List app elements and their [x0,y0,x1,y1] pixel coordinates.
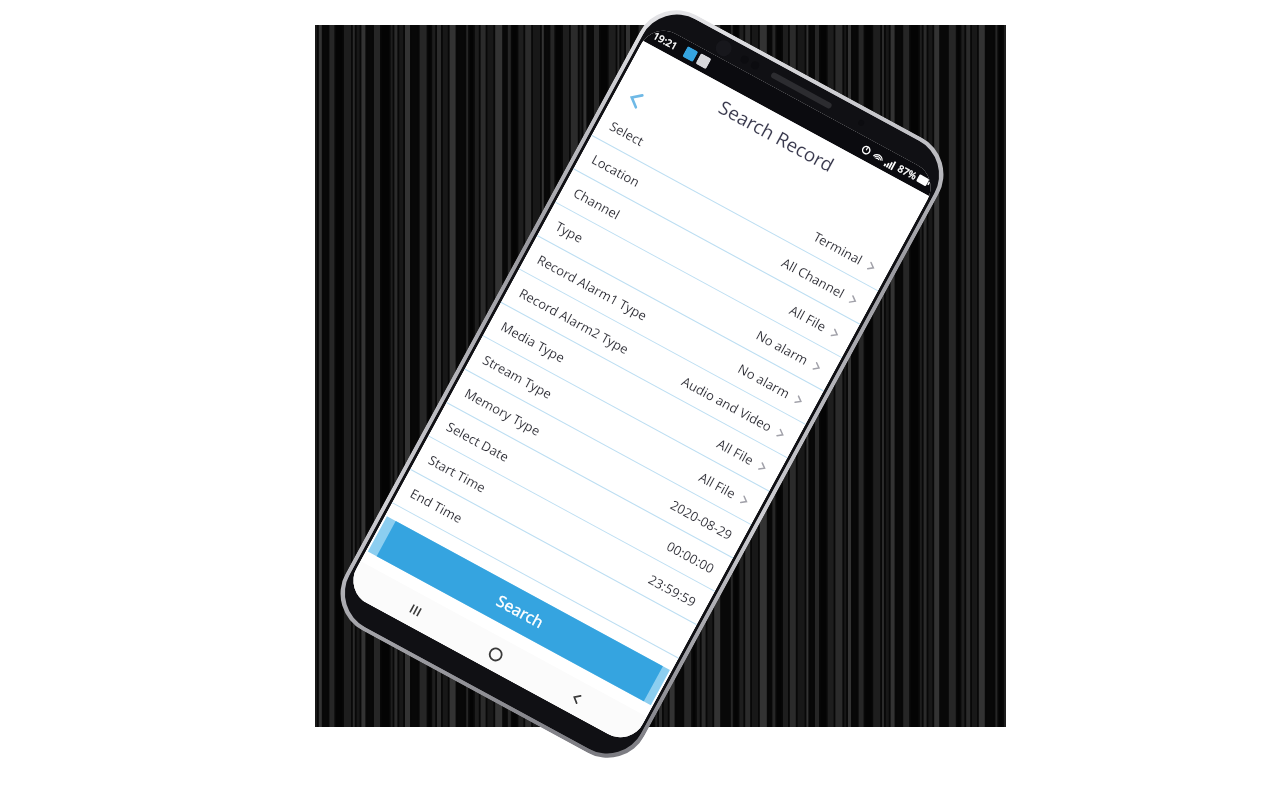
staticText: No alarm [734,359,793,402]
staticText: End Time [407,484,466,527]
staticText: Select Date [443,417,513,466]
staticText: Media Type [498,317,569,367]
button[interactable]: Home [470,629,521,678]
staticText: Record Alarm1 Type [534,250,651,325]
button[interactable]: Back [609,76,910,258]
button[interactable]: Record Alarm2 Type [501,269,805,458]
staticText: 19:21 [651,28,680,53]
button[interactable]: Search [377,521,663,701]
button[interactable]: Location [573,136,878,325]
staticText: All File [786,300,829,335]
staticText: All File [713,434,757,469]
staticText: 87% [895,161,919,183]
staticText: Type [552,217,586,247]
staticText: Select [607,117,648,150]
button[interactable]: End Time [392,470,696,659]
button[interactable]: Stream Type [464,336,769,525]
staticText: Search Record [714,94,839,178]
staticText: Stream Type [480,351,556,403]
button[interactable]: Media Type [482,303,787,492]
staticText: No alarm [753,326,811,369]
staticText: 00:00:00 [663,537,717,577]
staticText: Location [588,150,644,191]
button[interactable]: Select [591,102,896,291]
staticText: 23:59:59 [645,570,699,611]
staticText: Channel [570,184,624,224]
button[interactable]: Select Date [428,403,733,592]
button[interactable]: Type [537,202,841,391]
staticText: All File [695,467,739,502]
staticText: Search [493,590,548,633]
button[interactable]: Start Time [410,436,715,625]
button[interactable]: Recents [390,586,441,635]
button[interactable]: Back [551,673,602,722]
staticText: 2020-08-29 [667,496,735,544]
button[interactable]: Channel [555,169,860,358]
button[interactable]: Memory Type [446,369,751,558]
staticText: Memory Type [462,384,544,440]
staticText: Start Time [425,451,489,497]
staticText: Terminal [810,227,866,269]
staticText: Audio and Video [679,372,775,436]
button[interactable]: Record Alarm1 Type [519,236,823,425]
staticText: All Channel [778,253,847,302]
staticText: Record Alarm2 Type [516,284,633,358]
